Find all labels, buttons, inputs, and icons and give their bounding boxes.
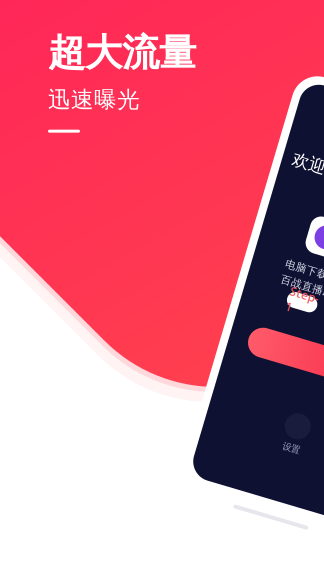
staticText: 电脑下载PC端: [282, 265, 324, 279]
staticText: 超大流量: [48, 30, 196, 76]
staticText: Step1: [287, 286, 317, 318]
staticText: 欢迎使用: [291, 157, 324, 179]
staticText: 百战直播助手: [282, 282, 324, 295]
staticText: 迅速曝光: [48, 86, 140, 114]
staticText: 设置: [286, 443, 304, 454]
